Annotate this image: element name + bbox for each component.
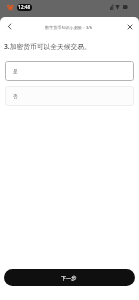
staticText: 是 [13,68,18,74]
staticText: 3.加密货币可以全天候交易。 [4,42,91,51]
staticText: 12:48 [18,4,31,11]
staticText: 否 [13,93,18,99]
button[interactable]: 下一步 [4,269,135,286]
button[interactable]: 是 [5,61,134,81]
button[interactable]: Close [120,17,139,36]
button[interactable]: Back [0,17,19,36]
staticText: 数字货币知识小测验：3/6 [45,25,93,31]
staticText: 下一步 [61,275,77,281]
button[interactable]: 否 [5,86,134,106]
